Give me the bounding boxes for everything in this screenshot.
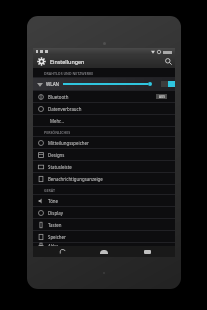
button[interactable]: Back xyxy=(48,246,76,257)
staticText: Benachrichtigungsanzeige xyxy=(48,176,103,182)
button[interactable]: Speicher xyxy=(33,231,175,242)
staticText: WLAN xyxy=(46,81,60,87)
staticText: Mitteilungsspeicher xyxy=(48,140,89,146)
button[interactable]: Bluetooth xyxy=(33,91,175,102)
staticText: Einstellungen xyxy=(50,58,85,65)
button[interactable]: Mitteilungsspeicher xyxy=(33,137,175,148)
button[interactable]: Benachrichtigungsanzeige xyxy=(33,173,175,184)
button[interactable]: Mehr... xyxy=(33,115,175,126)
button[interactable]: Tasten xyxy=(33,219,175,230)
button[interactable]: Statusleiste xyxy=(33,161,175,172)
button[interactable]: WLAN xyxy=(33,78,175,90)
staticText: Mehr... xyxy=(50,118,64,124)
button[interactable]: Designs xyxy=(33,149,175,160)
button[interactable]: Home xyxy=(90,246,118,257)
staticText: Display xyxy=(48,210,63,216)
staticText: Datenverbrauch xyxy=(48,106,82,112)
staticText: Statusleiste xyxy=(48,164,72,170)
button[interactable]: Datenverbrauch xyxy=(33,103,175,114)
staticText: Akku xyxy=(48,243,59,246)
staticText: AUS xyxy=(159,95,165,99)
staticText: DRAHTLOS UND NETZWERKE xyxy=(44,71,94,76)
staticText: Tasten xyxy=(48,222,62,228)
staticText: Töne xyxy=(48,198,58,204)
button[interactable]: Search xyxy=(161,55,175,68)
staticText: Designs xyxy=(48,152,65,158)
staticText: PERSÖNLICHES xyxy=(44,130,71,135)
button[interactable]: Recent apps xyxy=(133,246,161,257)
staticText: Speicher xyxy=(48,234,66,240)
button[interactable]: Akku xyxy=(33,243,175,246)
button[interactable]: Einstellungen xyxy=(33,55,175,68)
staticText: Bluetooth xyxy=(48,94,69,100)
staticText: GERÄT xyxy=(44,188,55,193)
button[interactable]: Töne xyxy=(33,195,175,206)
button[interactable]: Display xyxy=(33,207,175,218)
